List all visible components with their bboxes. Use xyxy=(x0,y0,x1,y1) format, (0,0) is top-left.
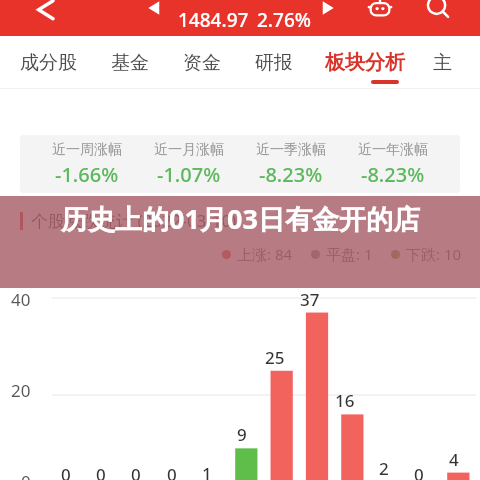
button[interactable]: 基金 xyxy=(111,39,149,87)
staticText: 下跌: 10 xyxy=(406,244,462,264)
staticText: 上涨: 84 xyxy=(237,244,293,264)
button[interactable]: 成分股 xyxy=(20,39,77,87)
button[interactable]: 主 xyxy=(433,39,452,87)
staticText: 0 xyxy=(61,463,71,480)
staticText: 平盘: 1 xyxy=(326,244,373,264)
button[interactable]: Back xyxy=(26,0,62,27)
staticText: -1.07% xyxy=(157,161,221,188)
button[interactable]: Previous xyxy=(134,0,170,26)
button[interactable]: 近一周涨幅 xyxy=(20,135,460,193)
button[interactable]: Search xyxy=(420,0,456,24)
staticText: 板块分析 xyxy=(325,50,405,75)
staticText: 0 xyxy=(167,463,177,480)
staticText: 0 xyxy=(131,463,141,480)
staticText: 近一季涨幅 xyxy=(256,141,326,159)
button[interactable]: Assistant xyxy=(362,0,398,24)
staticText: 1484.97 xyxy=(178,7,249,33)
staticText: 0 xyxy=(21,470,31,480)
staticText: 主 xyxy=(433,51,452,75)
staticText: 25 xyxy=(265,346,285,369)
staticText: 40 xyxy=(11,288,31,311)
staticText: 基金 xyxy=(111,51,149,75)
staticText: -1.66% xyxy=(55,161,119,188)
staticText: 37 xyxy=(300,288,320,311)
staticText: 近一年涨幅 xyxy=(358,141,428,159)
staticText: 2.76% xyxy=(257,7,311,33)
staticText: -8.23% xyxy=(361,161,425,188)
button[interactable]: 资金 xyxy=(183,39,221,87)
staticText: -8.23% xyxy=(259,161,323,188)
staticText: 历史上的01月03日有金开的店 xyxy=(61,200,420,237)
staticText: 个股涨跌统计 (2022-03-10) xyxy=(31,209,237,232)
staticText: 16 xyxy=(335,389,355,412)
button[interactable]: 板块分析 xyxy=(325,38,405,87)
staticText: 资金 xyxy=(183,51,221,75)
staticText: 研报 xyxy=(255,51,293,75)
staticText: 成分股 xyxy=(20,51,77,75)
staticText: 0 xyxy=(414,463,424,480)
staticText: 近一周涨幅 xyxy=(52,141,122,159)
button[interactable]: 研报 xyxy=(255,39,293,87)
staticText: 9 xyxy=(237,423,247,446)
staticText: 2 xyxy=(379,457,389,480)
staticText: 0 xyxy=(96,463,106,480)
staticText: 1 xyxy=(202,462,212,480)
button[interactable]: Next xyxy=(312,0,348,26)
staticText: 近一月涨幅 xyxy=(154,141,224,159)
staticText: 4 xyxy=(449,448,459,471)
staticText: 20 xyxy=(11,379,31,402)
